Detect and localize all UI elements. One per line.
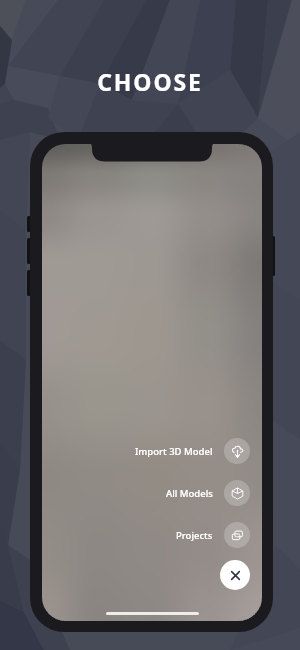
button[interactable]: Projects xyxy=(176,522,250,548)
staticText: CHOOSE xyxy=(97,66,203,97)
button[interactable]: All Models xyxy=(166,480,250,506)
staticText: Import 3D Model xyxy=(135,445,213,458)
button[interactable]: Import 3D Model xyxy=(135,438,250,464)
staticText: Projects xyxy=(176,529,213,542)
button[interactable]: Close menu xyxy=(220,560,250,590)
staticText: All Models xyxy=(166,487,213,500)
